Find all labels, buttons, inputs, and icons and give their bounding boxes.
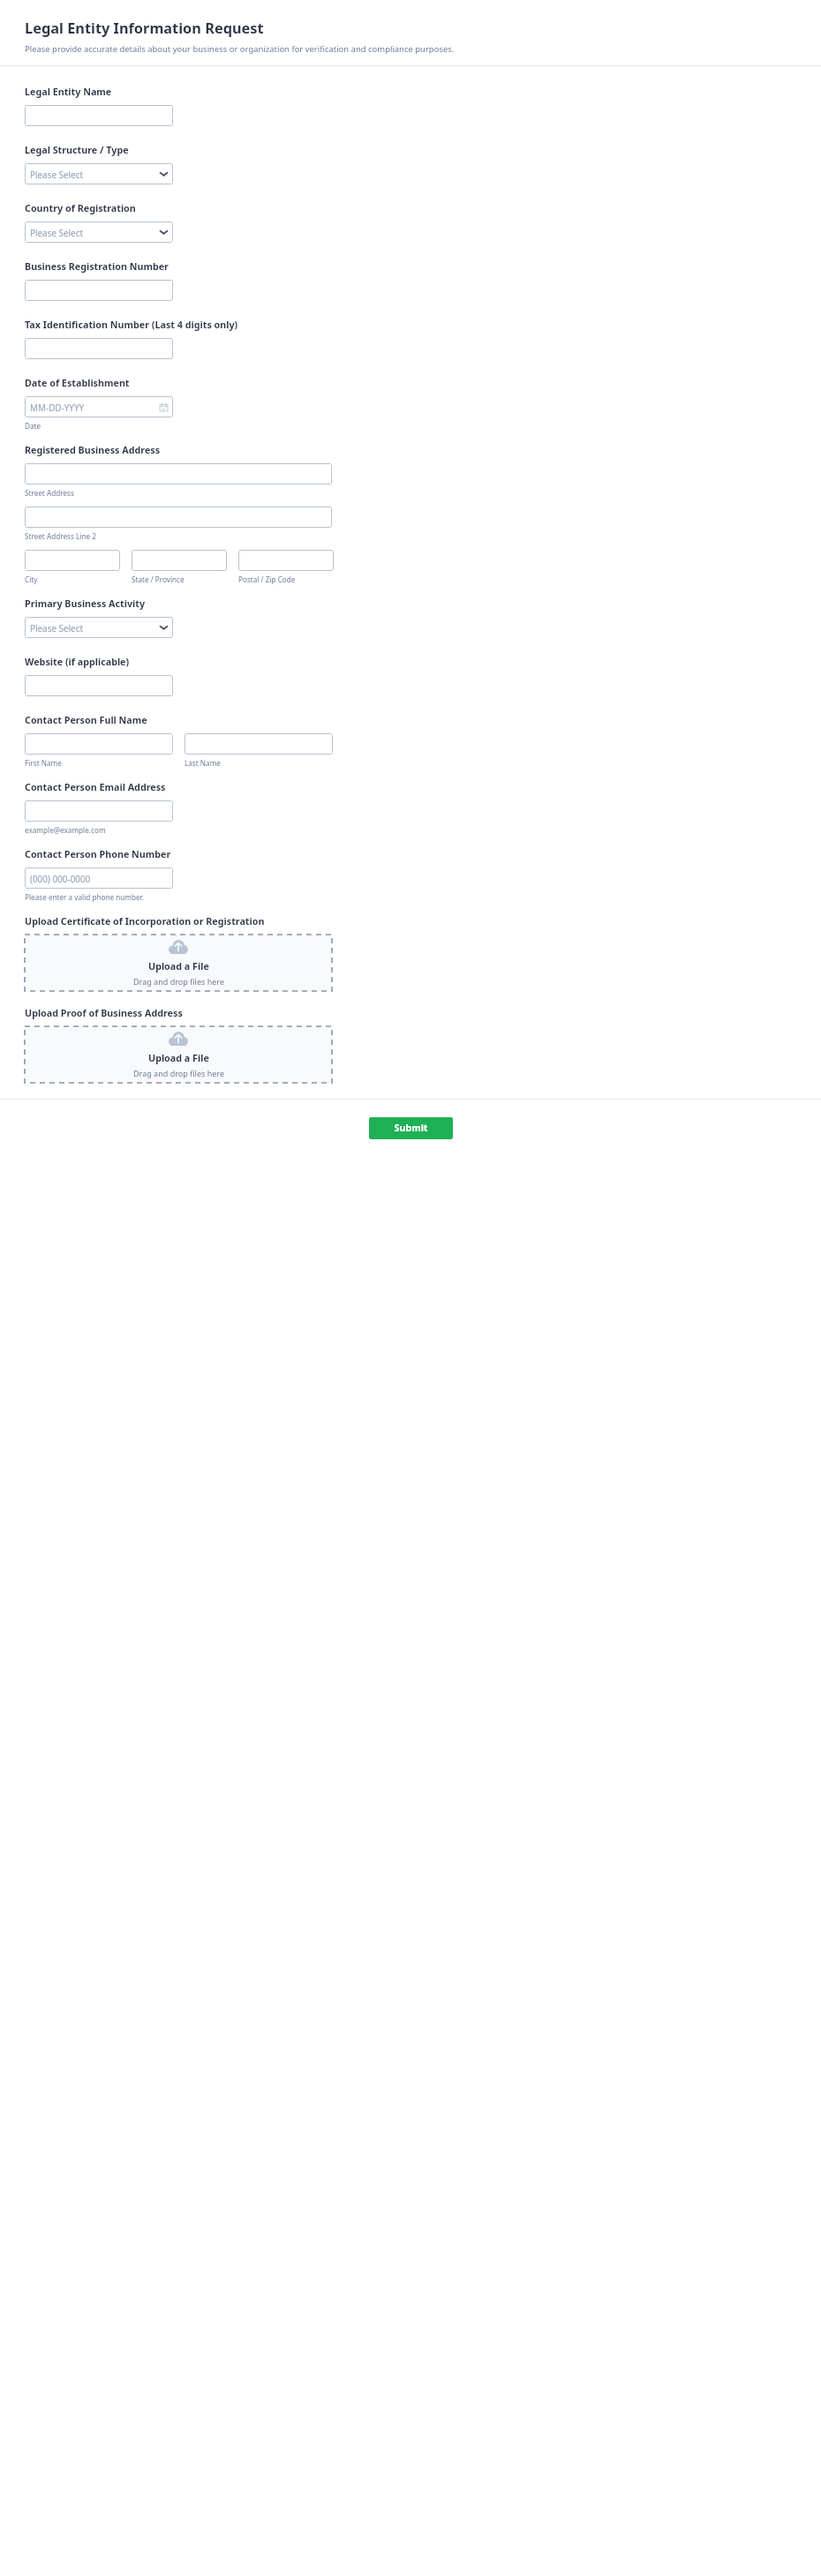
staticText: Country of Registration <box>25 202 136 215</box>
staticText: Business Registration Number <box>25 260 169 274</box>
button[interactable]: Please Select <box>25 163 173 184</box>
button[interactable]: (000) 000-0000 <box>25 867 173 889</box>
button[interactable] <box>25 550 120 571</box>
button[interactable]: Please Select <box>25 617 173 638</box>
staticText: Please enter a valid phone number. <box>25 892 144 902</box>
staticText: Drag and drop files here <box>133 976 224 987</box>
button[interactable] <box>25 733 173 755</box>
staticText: Street Address <box>25 488 74 498</box>
staticText: Upload Certificate of Incorporation or R… <box>25 915 265 928</box>
staticText: First Name <box>25 758 62 768</box>
staticText: Legal Structure / Type <box>25 144 129 157</box>
staticText: Drag and drop files here <box>133 1068 224 1078</box>
staticText: Please provide accurate details about yo… <box>25 43 455 55</box>
staticText: example@example.com <box>25 825 106 835</box>
staticText: (000) 000-0000 <box>30 873 91 884</box>
staticText: Street Address Line 2 <box>25 531 96 541</box>
staticText: Legal Entity Information Request <box>25 19 264 38</box>
button[interactable] <box>25 338 173 359</box>
staticText: Contact Person Email Address <box>25 781 166 794</box>
button[interactable]: Upload a File <box>25 935 332 991</box>
button[interactable]: Please Select <box>25 222 173 243</box>
button[interactable]: Upload a File <box>25 1026 332 1083</box>
staticText: Please Select <box>30 227 84 238</box>
staticText: MM-DD-YYYY <box>30 402 85 413</box>
staticText: Legal Entity Name <box>25 86 112 99</box>
button[interactable] <box>238 550 334 571</box>
staticText: State / Province <box>132 575 185 584</box>
button[interactable] <box>25 675 173 696</box>
button[interactable] <box>25 800 173 822</box>
staticText: Please Select <box>30 622 84 634</box>
staticText: Upload Proof of Business Address <box>25 1007 183 1020</box>
staticText: Upload a File <box>148 1052 209 1065</box>
button[interactable]: Submit <box>369 1117 453 1139</box>
staticText: Primary Business Activity <box>25 597 146 611</box>
button[interactable] <box>185 733 333 755</box>
staticText: Registered Business Address <box>25 444 161 457</box>
staticText: City <box>25 575 38 584</box>
staticText: Postal / Zip Code <box>238 575 296 584</box>
button[interactable] <box>25 507 332 528</box>
staticText: Upload a File <box>148 960 209 973</box>
button[interactable] <box>132 550 227 571</box>
staticText: Date of Establishment <box>25 377 130 390</box>
button[interactable] <box>25 463 332 484</box>
staticText: Website (if applicable) <box>25 656 130 669</box>
staticText: Contact Person Phone Number <box>25 848 171 861</box>
staticText: Date <box>25 421 41 431</box>
button[interactable] <box>25 105 173 126</box>
staticText: Submit <box>394 1122 428 1135</box>
staticText: Tax Identification Number (Last 4 digits… <box>25 319 238 332</box>
staticText: Contact Person Full Name <box>25 714 147 727</box>
button[interactable] <box>25 280 173 301</box>
staticText: Last Name <box>185 758 221 768</box>
staticText: Please Select <box>30 169 84 180</box>
button[interactable]: MM-DD-YYYY <box>25 396 173 417</box>
